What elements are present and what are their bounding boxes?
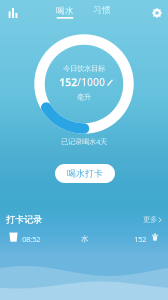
staticText: 08:52 — [22, 234, 40, 244]
staticText: 打卡记录 — [6, 214, 42, 225]
staticText: 习惯 — [93, 5, 111, 15]
button[interactable]: 喝水打卡 — [55, 164, 115, 183]
button[interactable]: 习惯 — [84, 2, 120, 22]
staticText: 已记录喝水4天 — [61, 136, 107, 147]
staticText: 今日饮水目标 — [63, 64, 105, 73]
button[interactable]: 更多 — [143, 214, 162, 225]
staticText: /1000 — [77, 75, 105, 89]
button[interactable]: Settings — [144, 2, 168, 24]
staticText: 喝水打卡 — [67, 168, 103, 179]
button[interactable]: Delete record — [149, 231, 161, 243]
staticText: 喝水 — [56, 5, 74, 16]
button[interactable]: Statistics — [0, 2, 26, 24]
staticText: 152 — [134, 234, 146, 244]
staticText: 152 — [59, 75, 77, 89]
staticText: 毫升 — [77, 92, 91, 102]
staticText: 水 — [81, 234, 88, 243]
button[interactable]: 喝水 — [47, 2, 83, 22]
staticText: 更多 — [143, 215, 157, 224]
